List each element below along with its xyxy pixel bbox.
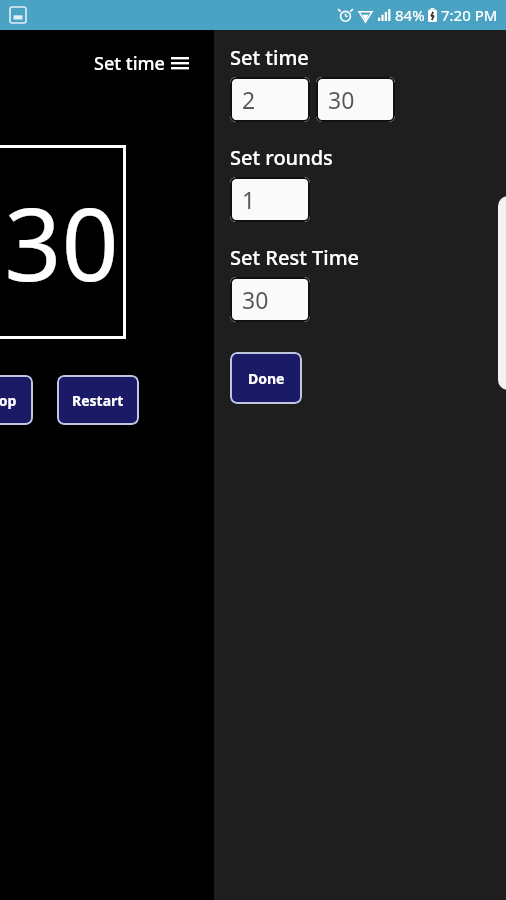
staticText: 30 bbox=[242, 284, 269, 315]
other: Menu bbox=[171, 56, 189, 71]
staticText: Done bbox=[248, 369, 285, 388]
staticText: Set rounds bbox=[230, 144, 333, 171]
button[interactable]: Set time bbox=[90, 49, 193, 78]
staticText: Restart bbox=[72, 391, 124, 410]
staticText: 2 bbox=[242, 84, 256, 115]
button[interactable]: Stop bbox=[0, 375, 33, 425]
button[interactable]: 30 bbox=[230, 277, 310, 322]
staticText: 1 bbox=[242, 184, 256, 215]
staticText: 7:20 PM bbox=[441, 5, 498, 25]
button[interactable]: Restart bbox=[57, 375, 139, 425]
button[interactable]: 1 bbox=[230, 177, 310, 222]
staticText: Set time bbox=[94, 51, 165, 76]
staticText: 84% bbox=[395, 5, 425, 25]
button[interactable]: 2:30 bbox=[0, 145, 126, 339]
staticText: Stop bbox=[0, 391, 17, 410]
staticText: 30 bbox=[328, 84, 355, 115]
staticText: Set Rest Time bbox=[230, 244, 360, 271]
button[interactable]: 2 bbox=[230, 77, 310, 122]
button[interactable]: Done bbox=[230, 352, 302, 404]
button[interactable]: 30 bbox=[316, 77, 395, 122]
staticText: 2:30 bbox=[0, 174, 119, 310]
staticText: Set time bbox=[230, 44, 309, 71]
